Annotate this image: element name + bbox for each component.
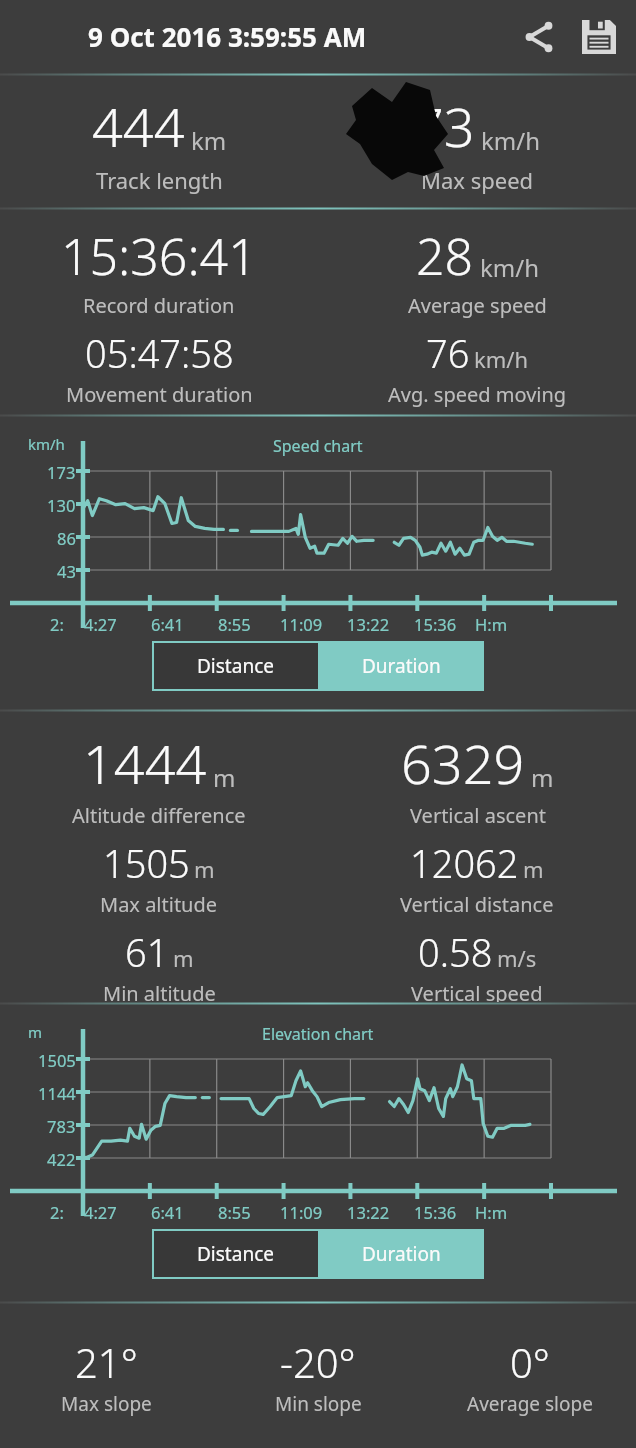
staticText: Duration (362, 653, 441, 679)
staticText: Elevation chart (262, 1023, 374, 1045)
staticText: 43 (57, 560, 76, 580)
staticText: -20° (280, 1335, 356, 1389)
staticText: Average slope (467, 1391, 593, 1417)
staticText: 6329 (401, 726, 525, 800)
staticText: 8:55 (218, 613, 251, 635)
staticText: 15:36:41 (61, 222, 257, 290)
staticText: m (523, 854, 544, 884)
staticText: 1505 (38, 1049, 76, 1071)
staticText: 1144 (38, 1082, 76, 1104)
staticText: 11:09 (280, 613, 323, 635)
staticText: Duration (362, 1241, 441, 1267)
staticText: 422 (47, 1148, 76, 1168)
staticText: 15:36 (414, 613, 457, 635)
staticText: 1444 (83, 726, 207, 800)
staticText: Distance (197, 1241, 274, 1267)
button[interactable]: Save (576, 14, 622, 60)
staticText: 444 (92, 89, 185, 163)
button[interactable]: Distance (152, 1229, 318, 1279)
button[interactable]: Duration (318, 1229, 484, 1279)
staticText: Average speed (408, 292, 547, 319)
staticText: 13:22 (347, 613, 390, 635)
staticText: 86 (57, 527, 76, 549)
staticText: 6:41 (151, 1201, 184, 1223)
staticText: 130 (47, 494, 76, 516)
staticText: 11:09 (280, 1201, 323, 1223)
staticText: 21° (75, 1335, 138, 1389)
staticText: 0.58 (418, 926, 493, 978)
staticText: 783 (47, 1115, 76, 1137)
staticText: Avg. speed moving (388, 381, 567, 408)
staticText: 05:47:58 (85, 327, 234, 379)
staticText: km/h (28, 434, 65, 454)
staticText: 28 (416, 222, 474, 290)
staticText: 13:22 (347, 1201, 390, 1223)
staticText: km/h (480, 251, 540, 284)
staticText: Vertical ascent (410, 802, 546, 829)
staticText: 2:13 (50, 613, 67, 635)
staticText: m/s (497, 943, 537, 973)
staticText: 15:36 (414, 1201, 457, 1223)
staticText: km (191, 124, 227, 157)
staticText: Vertical distance (400, 891, 554, 918)
button[interactable]: Share (516, 14, 562, 60)
staticText: m (213, 761, 236, 794)
staticText: Track length (96, 165, 223, 195)
staticText: Distance (197, 653, 274, 679)
staticText: Min altitude (103, 980, 216, 1002)
staticText: H:m (475, 613, 508, 635)
staticText: Movement duration (66, 381, 253, 408)
staticText: Max speed (421, 165, 534, 195)
staticText: 12062 (410, 837, 519, 889)
staticText: 61 (125, 926, 169, 978)
staticText: m (173, 943, 194, 973)
staticText: H:m (475, 1201, 508, 1223)
staticText: km/h (474, 344, 529, 374)
staticText: 1505 (103, 837, 190, 889)
staticText: Vertical speed (411, 980, 543, 1002)
staticText: Max altitude (100, 891, 218, 918)
staticText: m (194, 854, 215, 884)
staticText: Max slope (61, 1391, 152, 1417)
staticText: 6:41 (151, 613, 184, 635)
button[interactable]: Distance (152, 641, 318, 691)
staticText: Speed chart (273, 435, 363, 457)
staticText: Min slope (275, 1391, 362, 1417)
staticText: 9 Oct 2016 3:59:55 AM (88, 19, 367, 54)
staticText: km/h (481, 124, 541, 157)
staticText: 173 (47, 461, 76, 483)
staticText: m (531, 761, 554, 794)
staticText: 4:27 (84, 613, 117, 635)
staticText: 8:55 (218, 1201, 251, 1223)
button[interactable]: Duration (318, 641, 484, 691)
staticText: 4:27 (84, 1201, 117, 1223)
staticText: 2:13 (50, 1201, 67, 1223)
staticText: 73 (413, 89, 475, 163)
staticText: Record duration (83, 292, 235, 319)
staticText: 76 (426, 327, 470, 379)
staticText: Altitude difference (72, 802, 246, 829)
staticText: 0° (510, 1335, 550, 1389)
staticText: m (28, 1022, 43, 1042)
